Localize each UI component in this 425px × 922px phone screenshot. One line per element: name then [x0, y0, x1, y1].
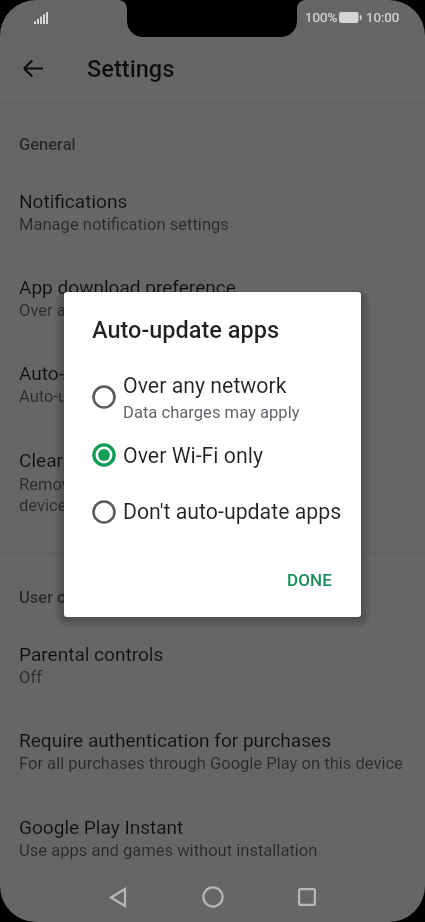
- staticText: Over any network: [19, 301, 147, 320]
- staticText: Over any network: [123, 373, 287, 398]
- staticText: Remove searches you've performed on this: [19, 475, 335, 494]
- staticText: Data charges may apply: [123, 403, 300, 422]
- staticText: Auto-update apps over Wi-Fi only: [19, 387, 261, 406]
- button[interactable]: Recent apps: [283, 873, 331, 921]
- staticText: App download preference: [19, 276, 236, 298]
- button[interactable]: [64, 369, 361, 425]
- button[interactable]: Back: [9, 44, 57, 92]
- button[interactable]: [0, 344, 425, 406]
- staticText: Don't auto-update apps: [123, 499, 342, 524]
- staticText: Google Play Instant: [19, 816, 184, 838]
- staticText: Off: [19, 668, 42, 687]
- button[interactable]: Back: [94, 873, 142, 921]
- button[interactable]: DONE: [278, 562, 340, 598]
- staticText: Auto-update apps: [19, 362, 169, 384]
- button[interactable]: [0, 258, 425, 320]
- staticText: Notifications: [19, 190, 128, 212]
- staticText: 10:00: [366, 10, 400, 26]
- staticText: Over Wi-Fi only: [123, 443, 263, 468]
- staticText: Manage notification settings: [19, 215, 229, 234]
- staticText: Parental controls: [19, 643, 164, 665]
- staticText: 100%: [305, 10, 338, 26]
- button[interactable]: [0, 712, 425, 774]
- button[interactable]: [64, 490, 361, 534]
- button[interactable]: [0, 172, 425, 234]
- staticText: General: [19, 135, 76, 154]
- button[interactable]: [0, 625, 425, 687]
- staticText: Settings: [87, 55, 175, 83]
- staticText: DONE: [287, 570, 332, 590]
- staticText: device: [19, 496, 67, 515]
- button[interactable]: [0, 431, 425, 515]
- staticText: Use apps and games without installation: [19, 841, 318, 860]
- button[interactable]: [64, 433, 361, 477]
- staticText: User controls: [19, 588, 118, 607]
- staticText: For all purchases through Google Play on…: [19, 754, 403, 773]
- button[interactable]: Home: [189, 873, 237, 921]
- staticText: Clear local search history: [19, 449, 233, 471]
- staticText: Auto-update apps: [92, 316, 280, 344]
- staticText: Require authentication for purchases: [19, 729, 331, 751]
- button[interactable]: [0, 798, 425, 860]
